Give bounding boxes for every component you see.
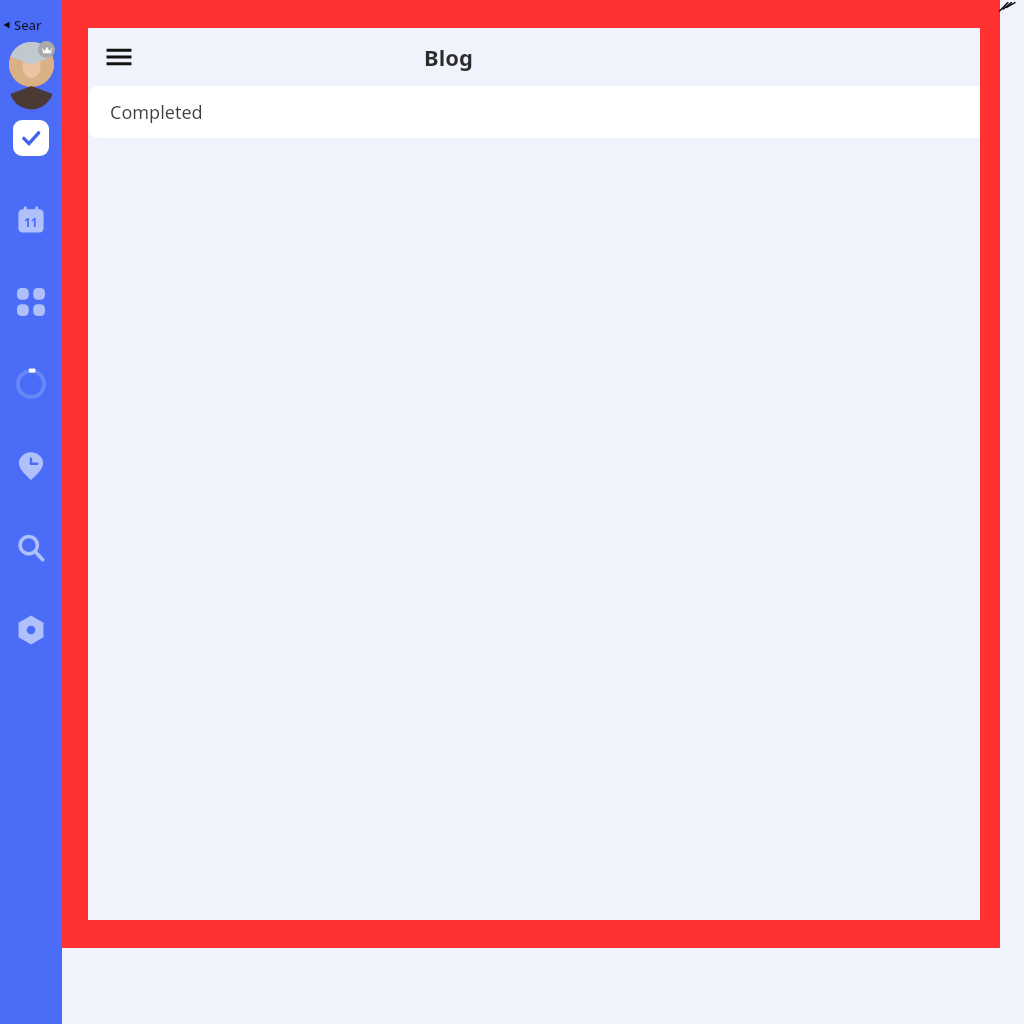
staticText: Sear [14, 16, 42, 34]
button[interactable]: Apps [13, 284, 49, 320]
staticText: 11 [24, 214, 38, 230]
button[interactable]: Menu [98, 36, 140, 78]
button[interactable]: Tasks [13, 120, 49, 156]
button[interactable]: Focus [13, 366, 49, 402]
staticText: Blog [424, 42, 473, 72]
button[interactable] [7, 40, 55, 88]
button[interactable]: Search [13, 530, 49, 566]
button[interactable]: Settings [13, 612, 49, 648]
staticText: Completed [110, 100, 203, 125]
button[interactable]: Calendar [13, 202, 49, 238]
button[interactable]: Completed [88, 86, 980, 138]
button[interactable]: History [13, 448, 49, 484]
